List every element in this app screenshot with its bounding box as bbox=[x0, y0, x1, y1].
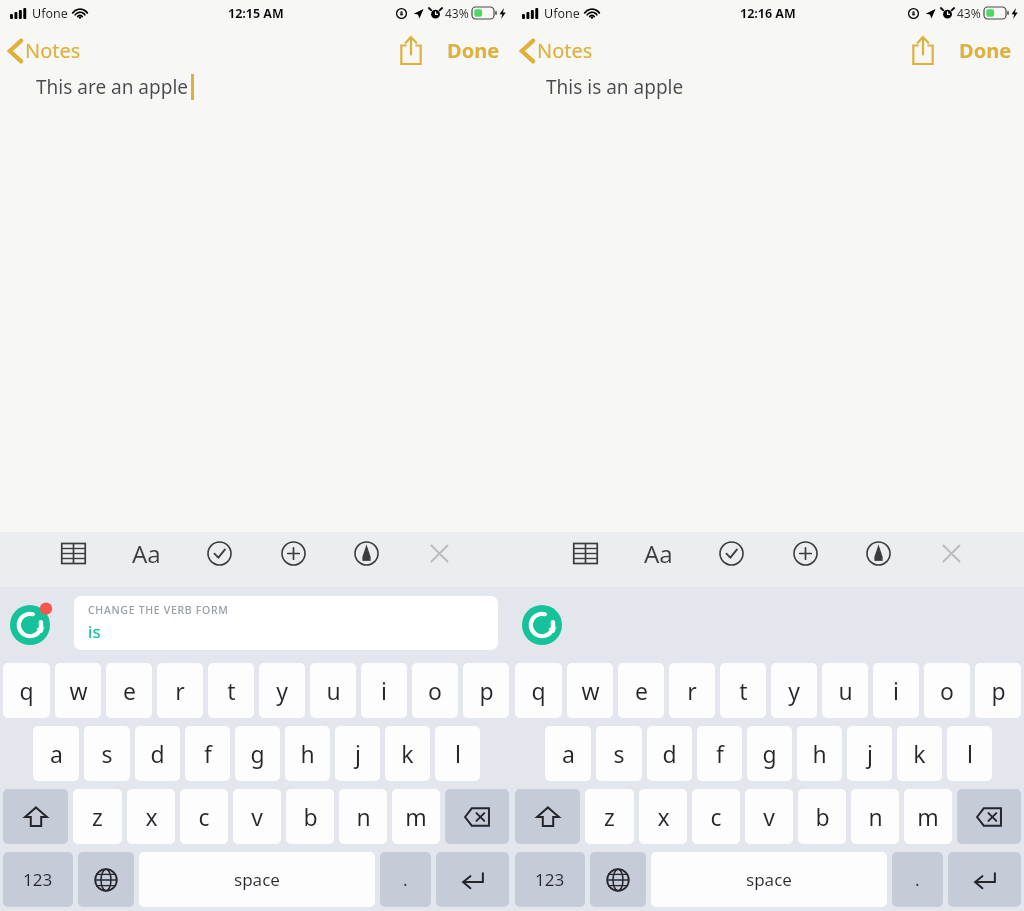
staticText: r bbox=[175, 675, 185, 706]
button[interactable]: t bbox=[720, 663, 766, 718]
button[interactable]: z bbox=[73, 789, 122, 844]
staticText: s bbox=[101, 738, 113, 769]
button[interactable]: Close keyboard bbox=[930, 532, 972, 574]
button[interactable]: o bbox=[412, 663, 458, 718]
button[interactable]: space bbox=[651, 852, 887, 907]
button[interactable]: Text format bbox=[637, 532, 679, 574]
button[interactable]: v bbox=[233, 789, 281, 844]
staticText: 123 bbox=[23, 868, 53, 891]
staticText: Aa bbox=[644, 537, 673, 570]
button[interactable]: q bbox=[3, 663, 50, 718]
button[interactable]: Share bbox=[903, 30, 943, 70]
button[interactable]: y bbox=[259, 663, 305, 718]
button[interactable]: p bbox=[975, 663, 1021, 718]
button[interactable]: Add attachment bbox=[272, 532, 314, 574]
button[interactable]: x bbox=[127, 789, 175, 844]
button[interactable]: Grammarly bbox=[520, 597, 572, 649]
button[interactable]: h bbox=[797, 726, 842, 781]
button[interactable]: Markup bbox=[857, 532, 899, 574]
button[interactable]: z bbox=[585, 789, 634, 844]
button[interactable]: 123 bbox=[515, 852, 585, 907]
button[interactable]: u bbox=[310, 663, 356, 718]
button[interactable]: m bbox=[904, 789, 952, 844]
button[interactable]: l bbox=[435, 726, 480, 781]
button[interactable]: . bbox=[380, 852, 431, 907]
button[interactable]: d bbox=[135, 726, 180, 781]
button[interactable]: j bbox=[847, 726, 892, 781]
button[interactable]: s bbox=[84, 726, 130, 781]
button[interactable]: g bbox=[747, 726, 792, 781]
button[interactable]: h bbox=[285, 726, 330, 781]
button[interactable]: c bbox=[180, 789, 228, 844]
button[interactable]: Notes bbox=[520, 37, 593, 64]
button[interactable]: n bbox=[851, 789, 899, 844]
button[interactable]: Table bbox=[52, 532, 94, 574]
button[interactable]: v bbox=[745, 789, 793, 844]
button[interactable]: Return bbox=[948, 852, 1021, 907]
button[interactable]: u bbox=[822, 663, 868, 718]
staticText: i bbox=[381, 675, 387, 706]
button[interactable]: Shift bbox=[515, 789, 580, 844]
button[interactable]: Shift bbox=[3, 789, 68, 844]
button[interactable]: Checklist bbox=[710, 532, 752, 574]
button[interactable]: CHANGE THE VERB FORM bbox=[74, 596, 498, 650]
button[interactable]: f bbox=[697, 726, 742, 781]
button[interactable]: a bbox=[545, 726, 591, 781]
button[interactable]: Table bbox=[564, 532, 606, 574]
button[interactable]: Change keyboard bbox=[78, 852, 134, 907]
button[interactable]: d bbox=[647, 726, 692, 781]
button[interactable]: 123 bbox=[3, 852, 73, 907]
button[interactable]: Backspace bbox=[445, 789, 509, 844]
button[interactable]: q bbox=[515, 663, 562, 718]
staticText: a bbox=[50, 738, 63, 769]
button[interactable]: e bbox=[618, 663, 664, 718]
button[interactable]: b bbox=[798, 789, 846, 844]
button[interactable]: x bbox=[639, 789, 687, 844]
button[interactable]: i bbox=[361, 663, 407, 718]
button[interactable]: o bbox=[924, 663, 970, 718]
button[interactable]: e bbox=[106, 663, 152, 718]
button[interactable]: m bbox=[392, 789, 440, 844]
button[interactable]: Grammarly bbox=[8, 597, 60, 649]
button[interactable]: Share bbox=[391, 30, 431, 70]
button[interactable]: Close keyboard bbox=[418, 532, 460, 574]
staticText: 43% bbox=[445, 5, 469, 21]
button[interactable]: k bbox=[385, 726, 430, 781]
button[interactable]: r bbox=[669, 663, 715, 718]
button[interactable]: Done bbox=[957, 33, 1014, 68]
button[interactable]: s bbox=[596, 726, 642, 781]
button[interactable]: p bbox=[463, 663, 509, 718]
button[interactable]: b bbox=[286, 789, 334, 844]
button[interactable]: Notes bbox=[8, 37, 81, 64]
button[interactable]: f bbox=[185, 726, 230, 781]
button[interactable]: y bbox=[771, 663, 817, 718]
staticText: f bbox=[204, 738, 212, 769]
button[interactable]: r bbox=[157, 663, 203, 718]
button[interactable]: t bbox=[208, 663, 254, 718]
button[interactable]: Return bbox=[436, 852, 509, 907]
button[interactable]: . bbox=[892, 852, 943, 907]
button[interactable]: n bbox=[339, 789, 387, 844]
button[interactable]: l bbox=[947, 726, 992, 781]
button[interactable]: c bbox=[692, 789, 740, 844]
button[interactable]: w bbox=[55, 663, 101, 718]
staticText: b bbox=[815, 801, 830, 832]
button[interactable]: j bbox=[335, 726, 380, 781]
staticText: This is an apple bbox=[546, 74, 684, 100]
button[interactable]: i bbox=[873, 663, 919, 718]
button[interactable]: Backspace bbox=[957, 789, 1021, 844]
staticText: p bbox=[991, 675, 1006, 706]
button[interactable]: Change keyboard bbox=[590, 852, 646, 907]
button[interactable]: Checklist bbox=[198, 532, 240, 574]
button[interactable]: Add attachment bbox=[784, 532, 826, 574]
button[interactable]: w bbox=[567, 663, 613, 718]
button[interactable]: Text format bbox=[125, 532, 167, 574]
button[interactable]: g bbox=[235, 726, 280, 781]
button[interactable]: Markup bbox=[345, 532, 387, 574]
button[interactable]: k bbox=[897, 726, 942, 781]
button[interactable]: Done bbox=[445, 33, 502, 68]
staticText: t bbox=[739, 675, 748, 706]
button[interactable]: space bbox=[139, 852, 375, 907]
staticText: e bbox=[635, 675, 648, 706]
button[interactable]: a bbox=[33, 726, 79, 781]
